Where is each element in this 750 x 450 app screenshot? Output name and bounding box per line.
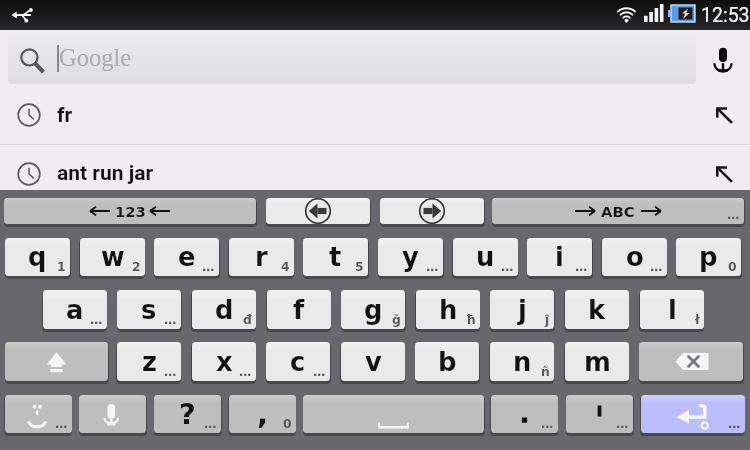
staticText: ħ	[466, 313, 476, 327]
button[interactable]: arrowleft	[266, 198, 370, 224]
staticText: …	[650, 260, 663, 274]
staticText: c	[290, 347, 306, 377]
staticText: …	[164, 313, 177, 327]
staticText: Google	[59, 44, 132, 71]
staticText: h	[439, 295, 458, 325]
button[interactable]: g	[341, 290, 405, 329]
button[interactable]: l	[640, 290, 704, 329]
staticText: …	[90, 313, 103, 327]
staticText: r	[255, 242, 268, 272]
staticText: ĵ	[545, 313, 550, 327]
staticText: q	[28, 242, 47, 272]
staticText: đ	[243, 313, 252, 327]
button[interactable]: fr	[0, 86, 750, 144]
staticText: …	[204, 417, 217, 431]
staticText: w	[101, 242, 125, 272]
staticText: l	[668, 295, 677, 325]
staticText: o	[626, 242, 644, 272]
staticText: d	[215, 295, 234, 325]
staticText: z	[142, 347, 157, 377]
staticText: ñ	[541, 365, 550, 379]
button[interactable]: Voice search	[696, 33, 750, 85]
button[interactable]: b	[415, 342, 479, 381]
button[interactable]: d	[192, 290, 256, 329]
staticText: 1	[57, 260, 66, 274]
staticText: …	[164, 365, 177, 379]
button[interactable]: ant run jar	[0, 145, 750, 202]
button[interactable]: j	[490, 290, 554, 329]
button[interactable]: space	[303, 395, 484, 433]
staticText: g	[364, 295, 383, 325]
staticText: f	[293, 295, 305, 325]
button[interactable]: i	[527, 238, 592, 276]
button[interactable]: r	[229, 238, 294, 276]
staticText: fr	[57, 103, 73, 128]
staticText: b	[438, 347, 457, 377]
button[interactable]: 123	[4, 198, 256, 224]
staticText: k	[588, 295, 606, 325]
button[interactable]: ,	[229, 395, 296, 433]
staticText: 0	[283, 417, 292, 431]
button[interactable]: backspace	[639, 342, 743, 381]
staticText: a	[66, 295, 84, 325]
button[interactable]: arrowright	[380, 198, 484, 224]
button[interactable]: f	[267, 290, 331, 329]
staticText: …	[55, 417, 68, 431]
staticText: 123	[115, 203, 146, 220]
staticText: ğ	[392, 313, 401, 327]
staticText: ant run jar	[57, 161, 154, 186]
staticText: …	[727, 208, 740, 222]
button[interactable]: z	[117, 342, 181, 381]
button[interactable]: shift	[5, 342, 108, 381]
button[interactable]: apos	[566, 395, 633, 433]
button[interactable]: m	[565, 342, 629, 381]
button[interactable]: Fill in suggestion	[697, 145, 750, 202]
button[interactable]: Fill in suggestion	[697, 86, 750, 144]
staticText: s	[141, 295, 157, 325]
staticText: 0	[728, 260, 737, 274]
button[interactable]: c	[266, 342, 330, 381]
button[interactable]: ABC	[492, 198, 744, 224]
staticText: x	[216, 347, 233, 377]
button[interactable]: dot	[491, 395, 558, 433]
staticText: …	[616, 417, 629, 431]
button[interactable]: a	[43, 290, 107, 329]
button[interactable]: u	[453, 238, 518, 276]
staticText: …	[239, 365, 252, 379]
button[interactable]: y	[378, 238, 443, 276]
staticText: 2	[132, 260, 141, 274]
button[interactable]: h	[416, 290, 480, 329]
staticText: ł	[695, 313, 700, 327]
button[interactable]: w	[80, 238, 145, 276]
button[interactable]: emoji	[5, 395, 72, 433]
button[interactable]: s	[117, 290, 181, 329]
button[interactable]: x	[192, 342, 256, 381]
staticText: y	[402, 242, 419, 272]
staticText: t	[329, 242, 342, 272]
staticText: j	[518, 295, 527, 325]
button[interactable]: v	[341, 342, 405, 381]
staticText: …	[575, 260, 588, 274]
button[interactable]: q	[5, 238, 70, 276]
staticText: …	[728, 417, 741, 431]
button[interactable]: enter	[641, 395, 745, 433]
button[interactable]: n	[490, 342, 554, 381]
button[interactable]: Google	[8, 35, 696, 84]
staticText: …	[541, 417, 554, 431]
staticText: ,	[257, 397, 269, 431]
staticText: 5	[355, 260, 364, 274]
staticText: u	[476, 242, 495, 272]
button[interactable]: e	[154, 238, 219, 276]
staticText: …	[426, 260, 439, 274]
button[interactable]: k	[565, 290, 629, 329]
button[interactable]: ?	[154, 395, 221, 433]
staticText: 12:53	[701, 4, 750, 27]
staticText: e	[178, 242, 196, 272]
button[interactable]: o	[602, 238, 667, 276]
button[interactable]: t	[303, 238, 368, 276]
staticText: ABC	[601, 203, 635, 220]
staticText: 4	[281, 260, 290, 274]
staticText: …	[501, 260, 514, 274]
button[interactable]: mic	[79, 395, 146, 433]
button[interactable]: p	[676, 238, 741, 276]
